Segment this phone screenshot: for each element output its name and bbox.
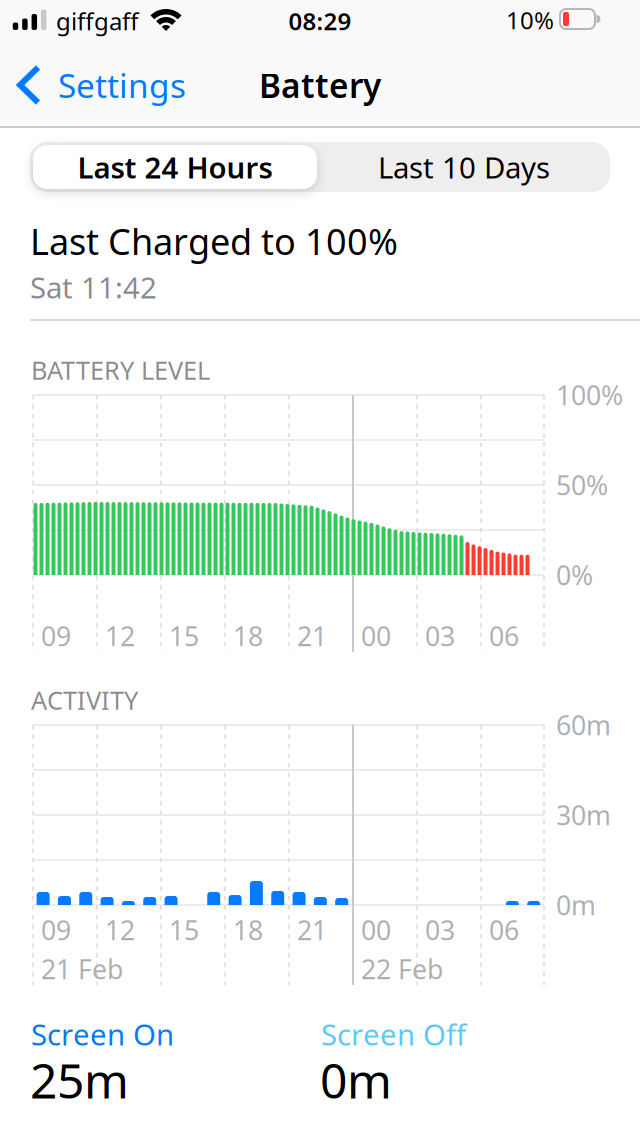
staticText: 00 [361,912,391,948]
staticText: 03 [425,618,455,654]
staticText: Last 24 Hours [77,147,272,186]
staticText: 08:29 [288,5,351,37]
staticText: 60m [556,707,611,743]
staticText: 15 [169,912,199,948]
staticText: 15 [169,618,199,654]
staticText: BATTERY LEVEL [31,353,210,387]
staticText: 00 [361,618,391,654]
staticText: 03 [425,912,455,948]
staticText: 21 [297,912,327,948]
staticText: 100% [556,377,623,413]
staticText: 25m [30,1048,129,1112]
staticText: 21 [297,618,327,654]
staticText: 06 [489,618,519,654]
staticText: 22 Feb [361,951,443,987]
staticText: 06 [489,912,519,948]
staticText: 0m [556,887,596,923]
staticText: 09 [41,618,71,654]
staticText: 12 [105,618,135,654]
staticText: Screen On [31,1014,174,1053]
staticText: Screen Off [321,1014,466,1053]
staticText: 18 [233,912,263,948]
staticText: 10% [506,4,554,36]
staticText: Sat 11:42 [30,267,157,306]
staticText: 0m [320,1048,392,1112]
button[interactable]: Last 10 Days [322,145,606,189]
staticText: Settings [58,63,186,107]
button[interactable]: Last 24 Hours [33,145,317,189]
staticText: 12 [105,912,135,948]
staticText: 30m [556,797,611,833]
staticText: 0% [556,557,593,593]
button[interactable]: Settings [14,60,186,110]
staticText: 50% [556,467,608,503]
staticText: Last 10 Days [378,147,550,186]
staticText: 09 [41,912,71,948]
staticText: giffgaff [56,5,139,37]
staticText: Battery [259,63,381,107]
staticText: Last Charged to 100% [30,217,398,265]
staticText: 21 Feb [41,951,123,987]
staticText: ACTIVITY [31,683,138,717]
staticText: 18 [233,618,263,654]
